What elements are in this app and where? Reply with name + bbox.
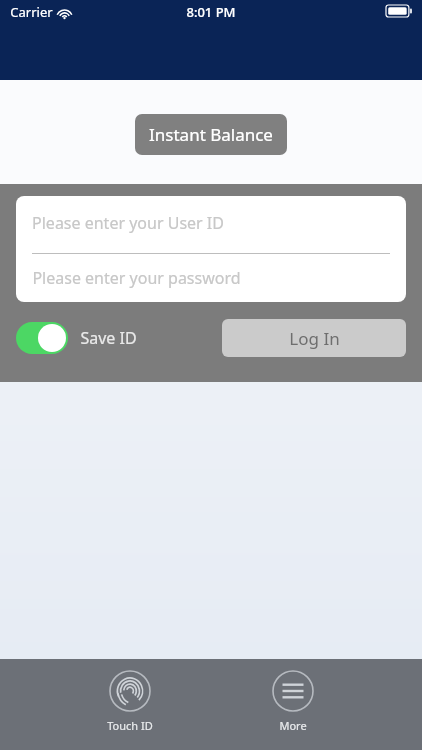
- button[interactable]: Please enter your User ID: [16, 196, 406, 254]
- staticText: Log In: [289, 327, 340, 350]
- staticText: Carrier: [10, 3, 53, 21]
- staticText: Please enter your password: [32, 267, 241, 289]
- staticText: Please enter your User ID: [32, 212, 224, 234]
- staticText: More: [279, 718, 307, 733]
- button[interactable]: Save ID: [16, 322, 137, 354]
- button[interactable]: Please enter your password: [16, 254, 406, 302]
- button[interactable]: Instant Balance: [135, 114, 287, 155]
- button[interactable]: Touch ID: [101, 659, 159, 737]
- staticText: Instant Balance: [149, 123, 273, 146]
- staticText: Touch ID: [107, 718, 153, 733]
- button[interactable]: Log In: [222, 319, 406, 357]
- button[interactable]: More: [266, 659, 320, 737]
- staticText: 8:01 PM: [186, 3, 236, 21]
- staticText: Save ID: [80, 327, 137, 349]
